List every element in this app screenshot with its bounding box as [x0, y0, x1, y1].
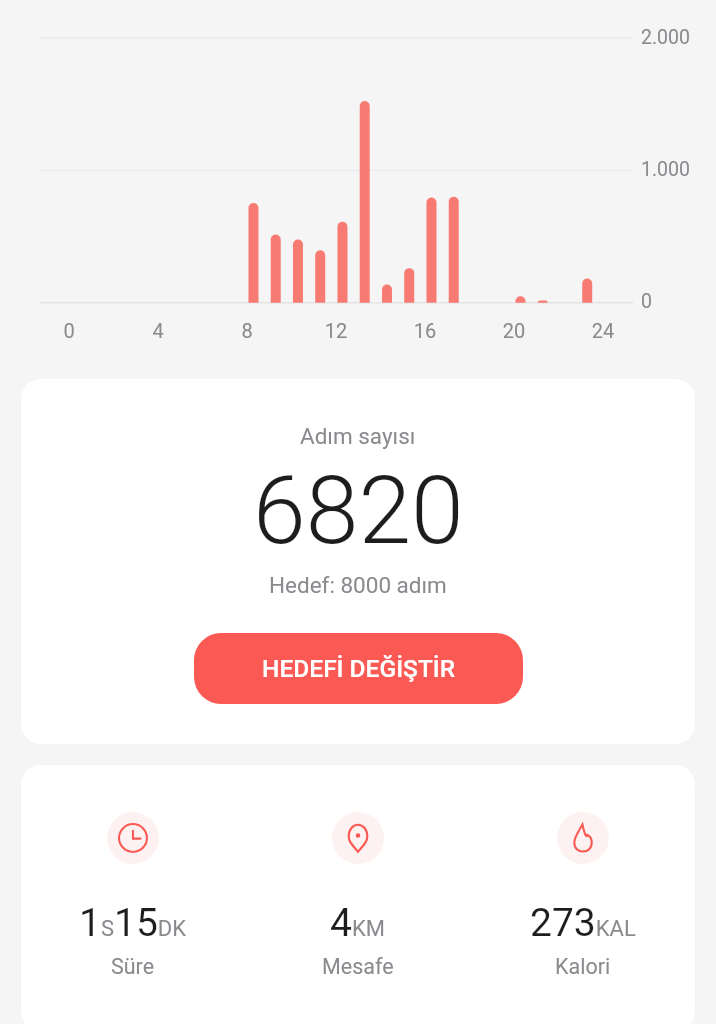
- button[interactable]: Calories: [470, 765, 695, 979]
- staticText: Kalori: [555, 954, 611, 979]
- staticText: Hedef: 8000 adım: [269, 572, 447, 598]
- staticText: 0: [44, 319, 94, 342]
- button[interactable]: Duration: [21, 765, 245, 979]
- staticText: 273KAL: [530, 900, 636, 946]
- staticText: Mesafe: [322, 954, 394, 979]
- other: Calories: [557, 812, 609, 864]
- staticText: 1.000: [641, 158, 690, 181]
- staticText: 12: [311, 319, 361, 342]
- staticText: HEDEFİ DEĞİŞTİR: [262, 654, 455, 683]
- staticText: 20: [489, 319, 539, 342]
- other: Duration: [107, 812, 159, 864]
- staticText: Süre: [111, 954, 155, 979]
- staticText: 8: [222, 319, 272, 342]
- button[interactable]: Distance: [245, 765, 470, 979]
- staticText: 2.000: [641, 26, 690, 49]
- staticText: 6820: [253, 455, 464, 566]
- button[interactable]: HEDEFİ DEĞİŞTİR: [194, 633, 523, 704]
- staticText: 4: [133, 319, 183, 342]
- staticText: 0: [641, 290, 652, 313]
- staticText: 16: [400, 319, 450, 342]
- staticText: Adım sayısı: [300, 423, 416, 449]
- other: Distance: [332, 812, 384, 864]
- staticText: 24: [578, 319, 628, 342]
- staticText: 4KM: [330, 900, 385, 946]
- staticText: 1S15DK: [79, 900, 187, 946]
